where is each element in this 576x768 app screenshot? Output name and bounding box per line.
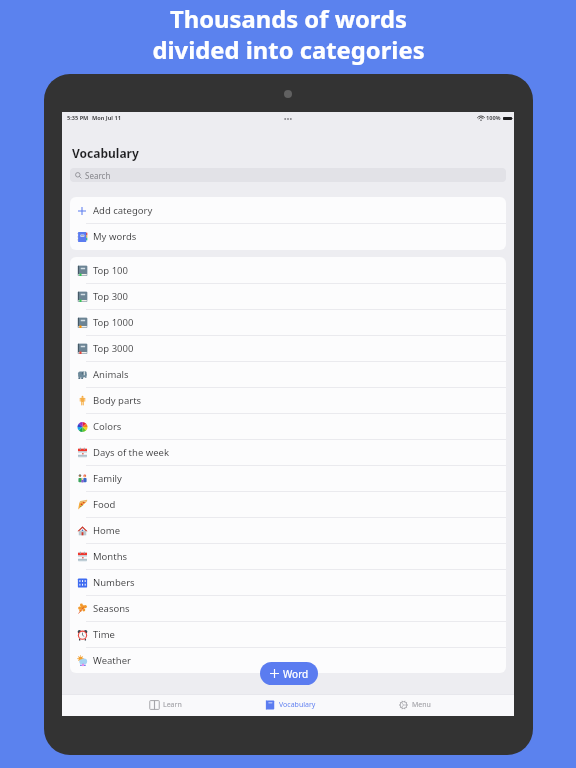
staticText: Body parts [93,394,142,407]
button[interactable]: Food [70,491,506,517]
staticText: Numbers [93,576,135,589]
button[interactable]: Weather [70,647,506,673]
staticText: Word [283,667,309,681]
staticText: Add category [93,204,153,217]
button[interactable]: Add category [70,197,506,223]
staticText: Top 100 [93,264,128,277]
button[interactable]: Home [70,517,506,543]
staticText: Thousands of words divided into categori… [152,3,425,66]
staticText: My words [93,230,137,243]
button[interactable]: Vocabulary [259,695,321,714]
button[interactable]: Word [260,662,318,685]
staticText: Months [93,550,128,563]
staticText: Mon Jul 11 [92,114,121,122]
button[interactable]: Body parts [70,387,506,413]
staticText: Animals [93,368,129,381]
staticText: Top 300 [93,290,128,303]
button[interactable]: Numbers [70,569,506,595]
button[interactable]: Top 3000 [70,335,506,361]
button[interactable]: Search [70,168,506,182]
button[interactable]: Months [70,543,506,569]
button[interactable]: Seasons [70,595,506,621]
staticText: 100% [486,114,501,122]
staticText: Seasons [93,602,130,615]
staticText: Learn [163,700,182,710]
button[interactable]: Menu [383,695,445,714]
staticText: Colors [93,420,122,433]
staticText: Search [85,170,111,181]
button[interactable]: Family [70,465,506,491]
button[interactable]: Animals [70,361,506,387]
staticText: Weather [93,654,131,667]
button[interactable]: Days of the week [70,439,506,465]
staticText: Vocabulary [72,145,139,161]
staticText: Menu [412,700,431,710]
button[interactable]: Time [70,621,506,647]
staticText: Top 3000 [93,342,134,355]
button[interactable]: My words [70,223,506,249]
staticText: Days of the week [93,446,170,459]
button[interactable]: Learn [134,695,196,714]
staticText: 5:35 PM [67,114,89,122]
staticText: Vocabulary [279,700,316,710]
staticText: Home [93,524,121,537]
staticText: Food [93,498,116,511]
staticText: Family [93,472,122,485]
staticText: Time [93,628,115,641]
staticText: Top 1000 [93,316,134,329]
button[interactable]: Colors [70,413,506,439]
button[interactable]: Top 300 [70,283,506,309]
button[interactable]: Top 1000 [70,309,506,335]
button[interactable]: Top 100 [70,257,506,283]
